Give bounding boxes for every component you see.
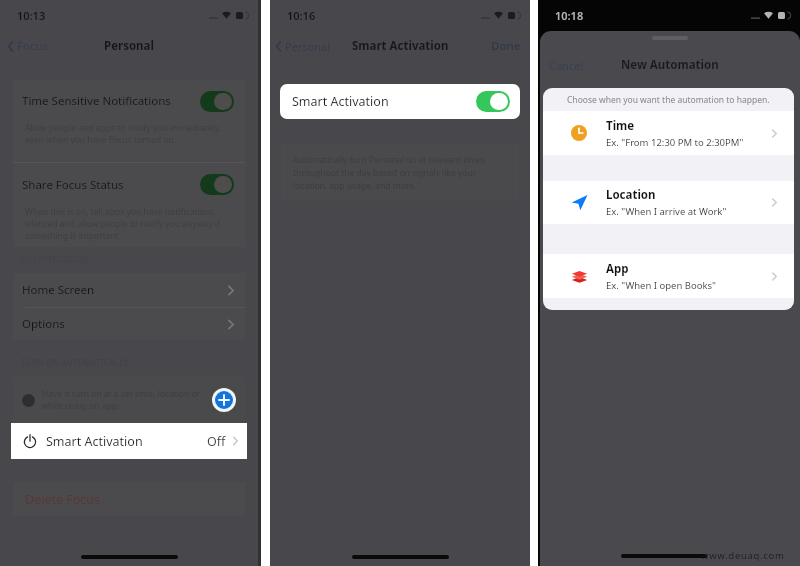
button[interactable]: Time Sensitive Notifications [13, 80, 245, 122]
staticText: Smart Activation [46, 433, 143, 450]
staticText: Home Screen [22, 282, 95, 298]
staticText: www.deuaq.com [701, 549, 785, 562]
staticText: Share Focus Status [22, 177, 124, 193]
button[interactable]: Done [491, 38, 521, 54]
staticText: App [606, 261, 629, 277]
staticText: Ex. "When I open Books" [606, 279, 716, 292]
button[interactable]: Home Screen [13, 273, 245, 307]
button[interactable]: Share Focus Status [13, 163, 245, 206]
button[interactable]: Options [13, 308, 245, 340]
staticText: 10:16 [287, 8, 316, 23]
button[interactable]: Add automation [212, 388, 236, 412]
staticText: Options [22, 316, 65, 332]
button[interactable]: Smart Activation [11, 423, 247, 459]
staticText: Location [606, 187, 656, 203]
staticText: Ex. "When I arrive at Work" [606, 205, 727, 218]
button[interactable] [200, 174, 234, 195]
staticText: Delete Focus [25, 491, 101, 508]
button[interactable]: Time [543, 111, 794, 155]
staticText: 10:18 [555, 8, 584, 23]
button[interactable]: App [543, 254, 794, 298]
staticText: Off [207, 433, 226, 450]
button[interactable] [476, 91, 510, 112]
staticText: Time Sensitive Notifications [22, 93, 171, 109]
staticText: Personal [285, 39, 331, 54]
button[interactable]: Delete Focus [13, 482, 245, 516]
staticText: Focus [17, 38, 49, 54]
staticText: Personal [104, 38, 154, 54]
staticText: Ex. "From 12:30 PM to 2:30PM" [606, 136, 744, 149]
button[interactable] [200, 91, 234, 112]
staticText: 10:13 [17, 8, 46, 23]
staticText: New Automation [621, 57, 719, 73]
button[interactable]: Focus [8, 38, 49, 54]
staticText: Smart Activation [292, 93, 389, 110]
button[interactable]: Location [543, 181, 794, 224]
staticText: Time [606, 118, 635, 134]
button[interactable]: Smart Activation [280, 84, 520, 119]
staticText: Automatically turn Personal on at releva… [293, 154, 486, 192]
staticText: Smart Activation [352, 38, 449, 54]
button[interactable]: Have it turn on at a set time, location … [13, 377, 245, 423]
button[interactable]: Cancel [549, 58, 584, 73]
staticText: Choose when you want the automation to h… [567, 94, 770, 106]
button[interactable]: Personal [276, 39, 331, 54]
